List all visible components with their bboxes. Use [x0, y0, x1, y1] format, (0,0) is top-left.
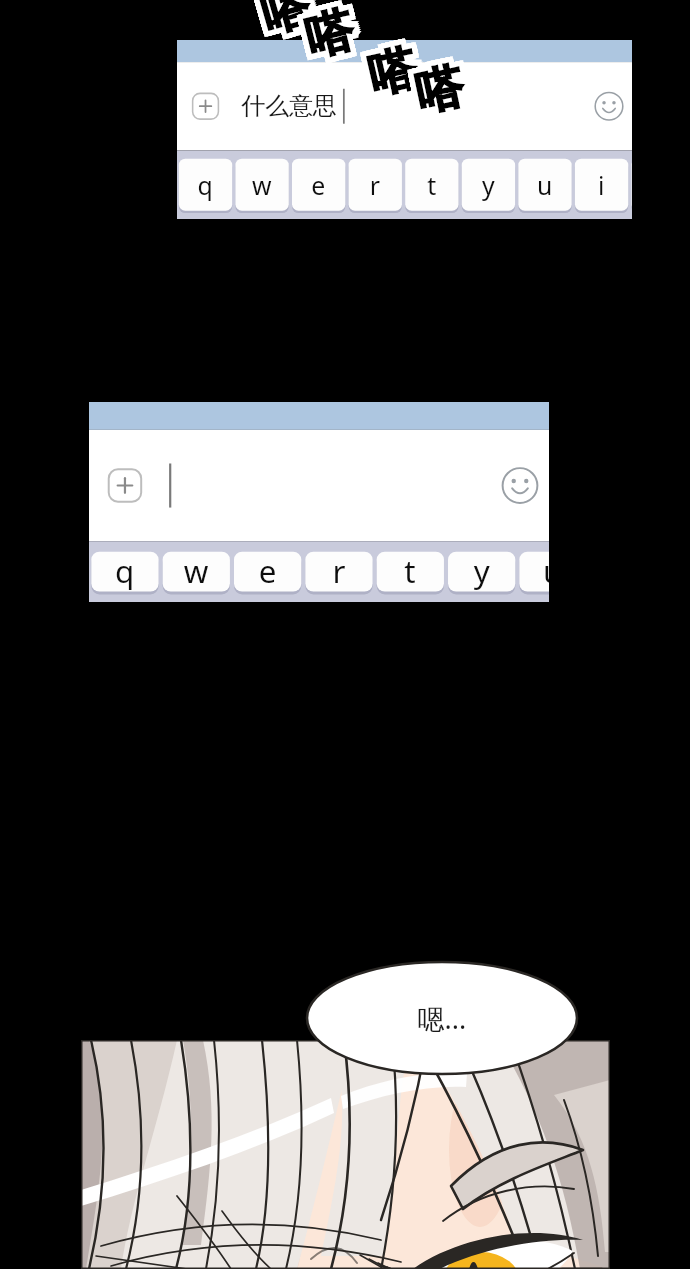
- button[interactable]: Comic episode page: [0, 0, 690, 1269]
